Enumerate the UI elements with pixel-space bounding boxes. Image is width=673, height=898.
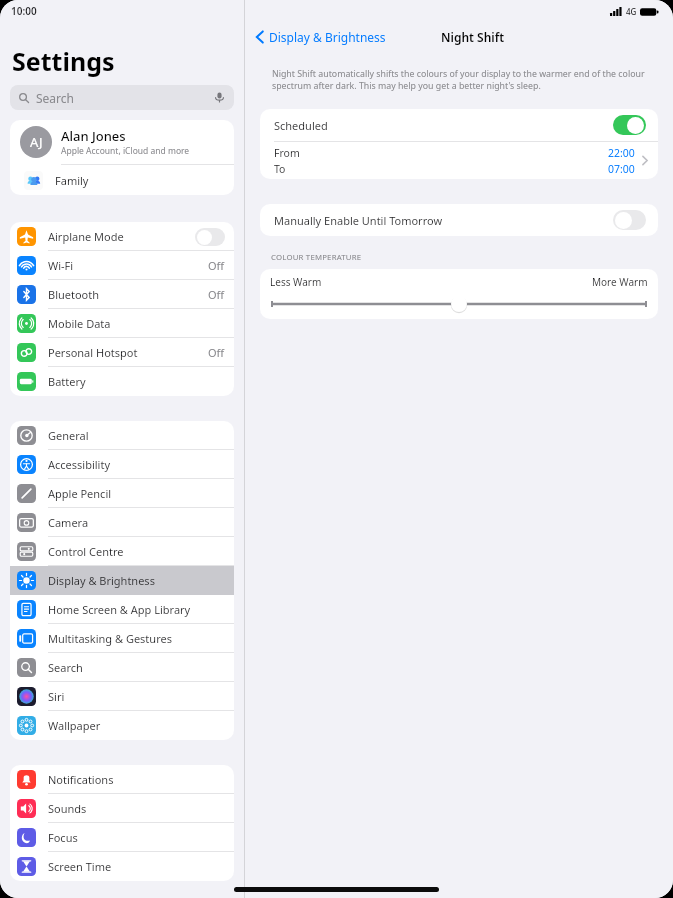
staticText: Off <box>208 287 225 302</box>
staticText: 4G <box>626 6 637 17</box>
staticText: Multitasking & Gestures <box>48 631 172 646</box>
staticText: Display & Brightness <box>48 573 155 588</box>
staticText: Display & Brightness <box>269 29 386 45</box>
button[interactable]: Multitasking & Gestures <box>10 624 234 653</box>
staticText: 07:00 <box>608 162 635 176</box>
staticText: Settings <box>12 44 115 78</box>
staticText: Night Shift <box>441 29 505 45</box>
button[interactable]: Camera <box>10 508 234 537</box>
button[interactable]: Battery <box>10 367 234 396</box>
button[interactable]: Manually Enable Until Tomorrow toggle <box>613 210 646 230</box>
staticText: To <box>274 162 286 176</box>
staticText: 10:00 <box>11 4 37 18</box>
button[interactable]: Home Screen & App Library <box>10 595 234 624</box>
button[interactable]: Sounds <box>10 794 234 823</box>
button[interactable]: Personal Hotspot <box>10 338 234 367</box>
button[interactable]: General <box>10 421 234 450</box>
staticText: Manually Enable Until Tomorrow <box>274 213 443 228</box>
button[interactable]: Airplane Mode toggle <box>195 228 225 246</box>
staticText: Wi-Fi <box>48 258 74 273</box>
button[interactable]: Display & Brightness <box>10 566 234 595</box>
staticText: Battery <box>48 374 86 389</box>
button[interactable]: Family <box>10 165 234 195</box>
button[interactable]: Scheduled <box>260 109 658 141</box>
staticText: Airplane Mode <box>48 229 124 244</box>
staticText: More Warm <box>592 275 648 289</box>
staticText: From <box>274 146 300 160</box>
button[interactable]: From <box>260 142 658 179</box>
button[interactable]: Screen Time <box>10 852 234 881</box>
button[interactable]: Accessibility <box>10 450 234 479</box>
button[interactable] <box>260 295 658 313</box>
staticText: General <box>48 428 89 443</box>
staticText: Night Shift automatically shifts the col… <box>272 68 655 92</box>
staticText: Notifications <box>48 772 114 787</box>
staticText: Focus <box>48 830 78 845</box>
staticText: Less Warm <box>270 275 322 289</box>
staticText: Off <box>208 258 225 273</box>
button[interactable]: Search <box>10 653 234 682</box>
staticText: Bluetooth <box>48 287 100 302</box>
staticText: Wallpaper <box>48 718 101 733</box>
staticText: Personal Hotspot <box>48 345 138 360</box>
staticText: Alan Jones <box>61 127 126 145</box>
staticText: Search <box>48 660 83 675</box>
staticText: Mobile Data <box>48 316 111 331</box>
button[interactable]: Control Centre <box>10 537 234 566</box>
button[interactable]: Notifications <box>10 765 234 794</box>
staticText: Search <box>36 90 74 106</box>
staticText: AJ <box>30 133 43 151</box>
button[interactable]: Display & Brightness <box>256 29 386 45</box>
staticText: 22:00 <box>608 146 635 160</box>
staticText: Screen Time <box>48 859 112 874</box>
staticText: Family <box>55 173 89 188</box>
staticText: COLOUR TEMPERATURE <box>271 252 362 263</box>
staticText: Accessibility <box>48 457 111 472</box>
staticText: Sounds <box>48 801 87 816</box>
button[interactable]: AJ <box>10 120 234 164</box>
staticText: Camera <box>48 515 89 530</box>
button[interactable]: Siri <box>10 682 234 711</box>
button[interactable]: Focus <box>10 823 234 852</box>
button[interactable]: Scheduled toggle <box>613 115 646 135</box>
staticText: Control Centre <box>48 544 124 559</box>
button[interactable]: Airplane Mode <box>10 222 234 251</box>
staticText: Scheduled <box>274 118 328 133</box>
button[interactable]: Manually Enable Until Tomorrow <box>260 204 658 236</box>
button[interactable]: Wallpaper <box>10 711 234 740</box>
button[interactable]: Mobile Data <box>10 309 234 338</box>
button[interactable]: Apple Pencil <box>10 479 234 508</box>
staticText: Off <box>208 345 225 360</box>
button[interactable]: Bluetooth <box>10 280 234 309</box>
staticText: Apple Pencil <box>48 486 112 501</box>
staticText: Apple Account, iCloud and more <box>61 145 190 157</box>
staticText: Home Screen & App Library <box>48 602 191 617</box>
button[interactable]: Wi-Fi <box>10 251 234 280</box>
button[interactable]: Search <box>10 85 234 110</box>
staticText: Siri <box>48 689 65 704</box>
